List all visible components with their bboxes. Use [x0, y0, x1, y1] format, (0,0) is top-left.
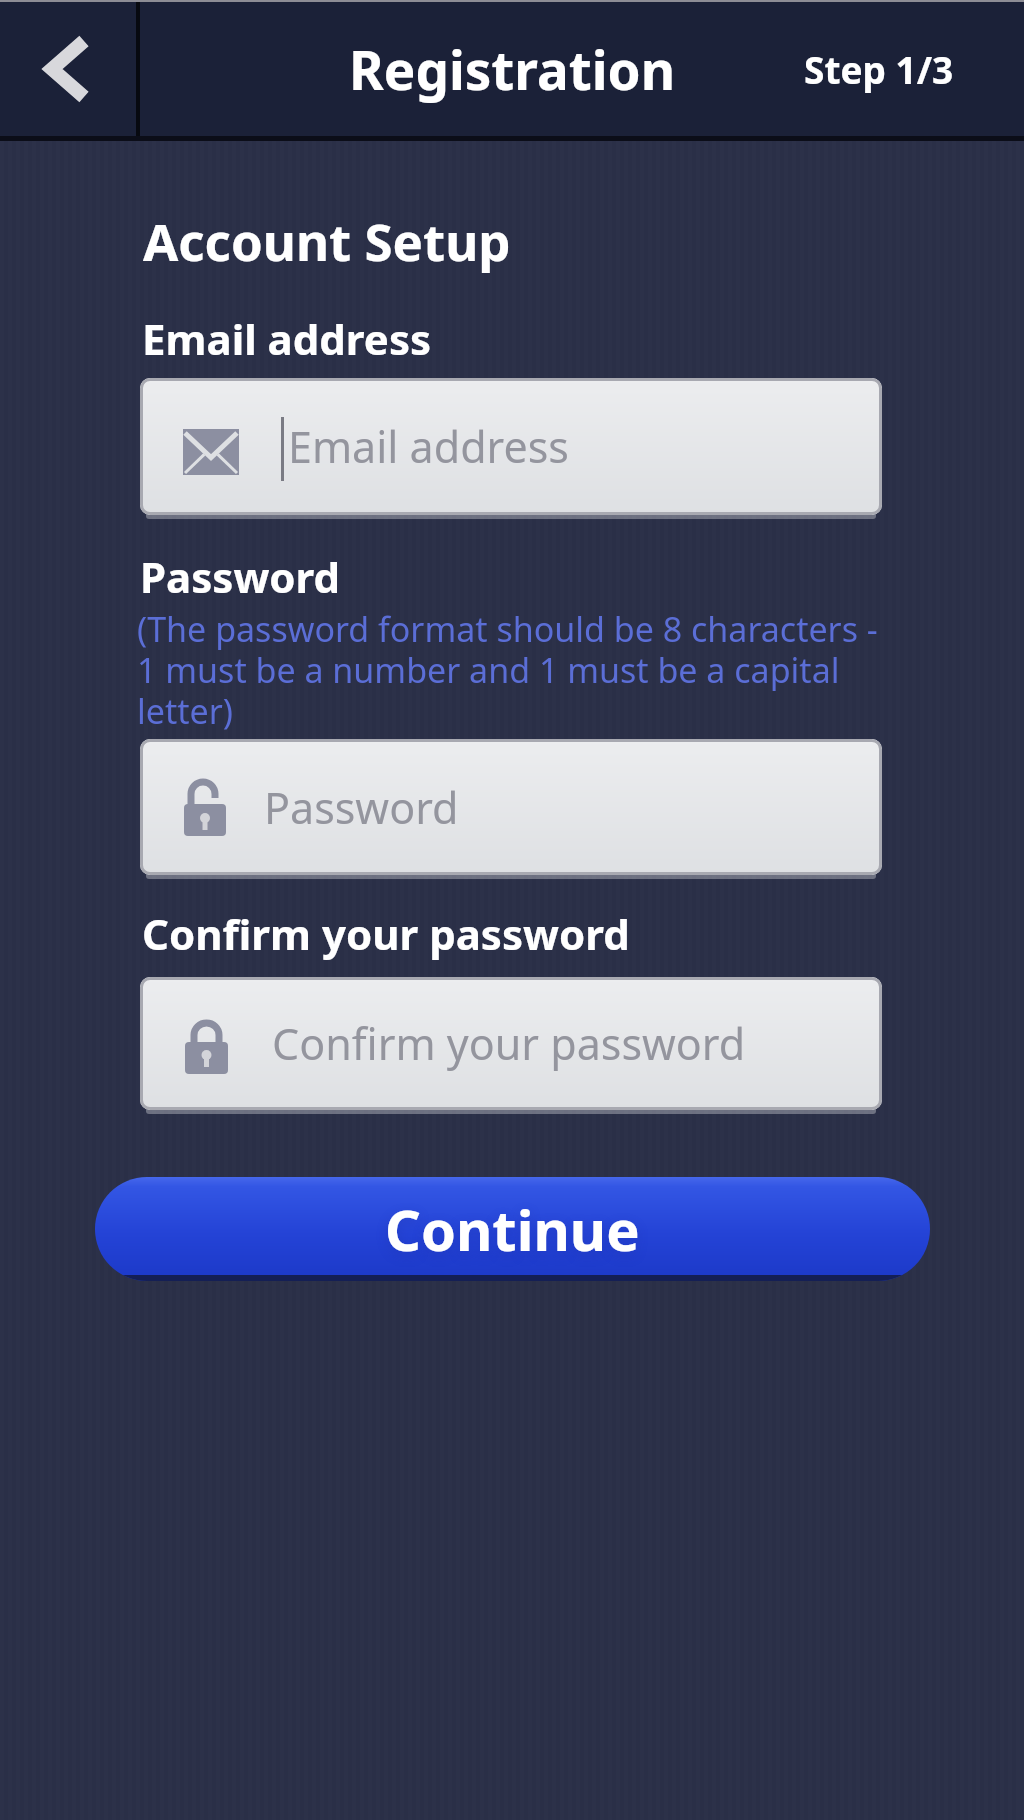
button[interactable] — [0, 2, 136, 136]
staticText: Confirm your password — [272, 1014, 746, 1073]
staticText: Registration — [349, 33, 676, 105]
staticText: Step 1/3 — [804, 44, 954, 94]
staticText: Continue — [385, 1191, 640, 1267]
staticText: (The password format should be 8 charact… — [137, 606, 878, 734]
button[interactable]: Continue — [95, 1177, 930, 1281]
staticText: Email address — [288, 417, 569, 476]
button[interactable] — [140, 977, 882, 1110]
button[interactable] — [140, 378, 882, 515]
staticText: Account Setup — [143, 206, 511, 275]
staticText: Confirm your password — [142, 905, 630, 962]
staticText: Password — [264, 778, 459, 837]
staticText: Password — [140, 548, 341, 605]
button[interactable] — [140, 739, 882, 875]
staticText: Email address — [142, 310, 432, 367]
